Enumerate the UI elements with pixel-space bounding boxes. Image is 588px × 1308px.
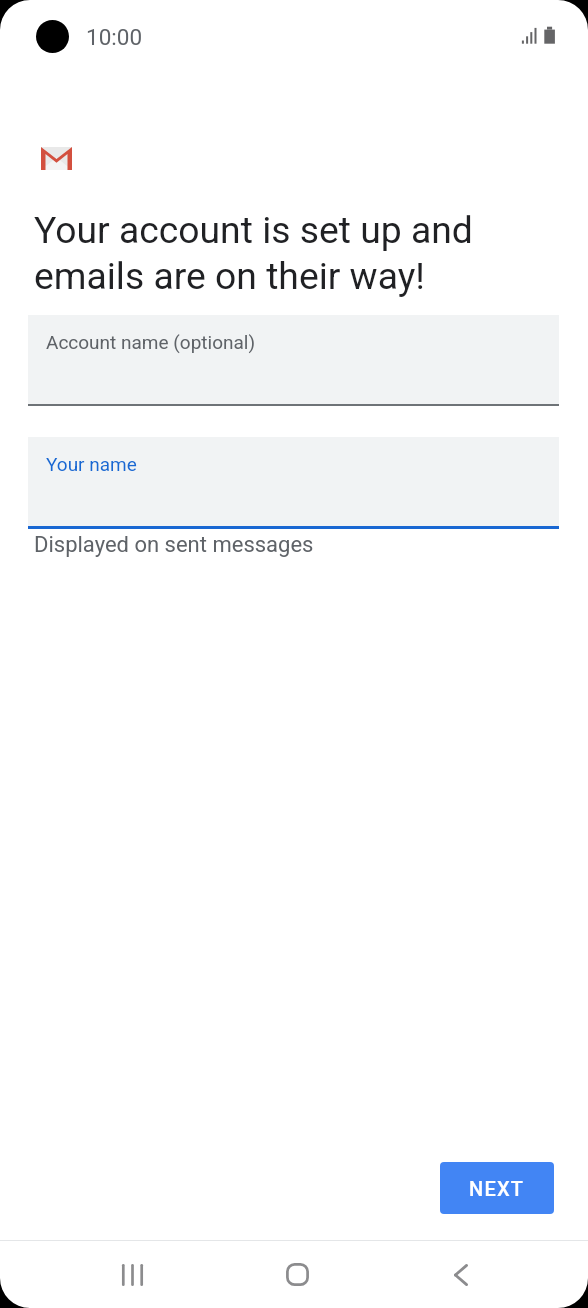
- staticText: Displayed on sent messages: [34, 532, 314, 558]
- staticText: Your name: [46, 453, 137, 475]
- button[interactable]: NEXT: [440, 1162, 554, 1214]
- button[interactable]: Recent apps: [50, 1241, 215, 1308]
- button[interactable]: Back: [379, 1241, 543, 1308]
- staticText: Account name (optional): [46, 331, 256, 353]
- button[interactable]: Account name (optional): [28, 315, 559, 404]
- button[interactable]: Your name: [28, 437, 559, 526]
- staticText: Your account is set up and emails are on…: [34, 208, 473, 298]
- staticText: NEXT: [469, 1177, 525, 1200]
- button[interactable]: Home: [215, 1241, 379, 1308]
- staticText: 10:00: [86, 24, 143, 50]
